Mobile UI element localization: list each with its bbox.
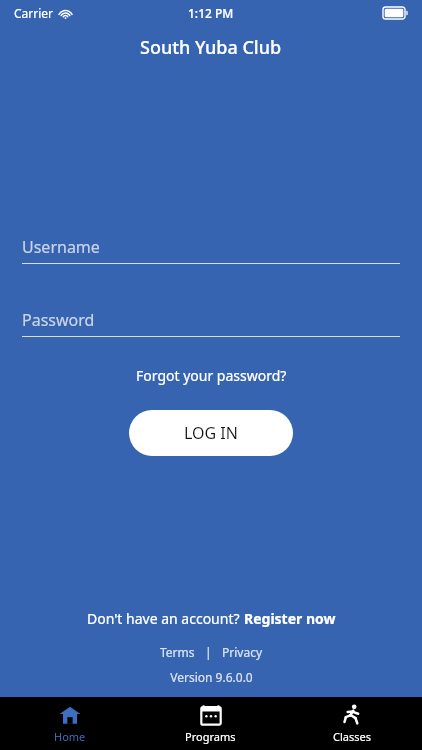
staticText: Programs bbox=[185, 729, 236, 744]
staticText: Terms bbox=[160, 644, 195, 660]
button[interactable]: Classes bbox=[281, 697, 422, 750]
button[interactable]: Privacy bbox=[218, 642, 267, 662]
button[interactable]: Don't have an account? bbox=[79, 606, 344, 631]
staticText: Forgot your password? bbox=[136, 366, 287, 385]
staticText: Register now bbox=[244, 609, 336, 628]
button[interactable]: Programs bbox=[140, 697, 281, 750]
button[interactable]: Terms bbox=[156, 642, 199, 662]
staticText: Privacy bbox=[222, 644, 263, 660]
button[interactable]: Password bbox=[22, 309, 400, 337]
staticText: Username bbox=[22, 236, 100, 258]
staticText: Version 9.6.0.0 bbox=[170, 669, 253, 685]
staticText: Password bbox=[22, 309, 95, 331]
staticText: Classes bbox=[333, 729, 371, 744]
button[interactable]: Forgot your password? bbox=[126, 362, 297, 389]
button[interactable]: Username bbox=[22, 236, 400, 264]
button[interactable]: Home bbox=[0, 697, 140, 750]
staticText: South Yuba Club bbox=[140, 35, 282, 60]
staticText: LOG IN bbox=[184, 422, 238, 444]
staticText: Carrier bbox=[14, 5, 54, 21]
staticText: Home bbox=[54, 729, 86, 744]
staticText: 1:12 PM bbox=[188, 5, 234, 21]
staticText: Don't have an account? bbox=[87, 609, 244, 628]
staticText: | bbox=[205, 644, 212, 660]
button[interactable]: LOG IN bbox=[129, 410, 293, 456]
